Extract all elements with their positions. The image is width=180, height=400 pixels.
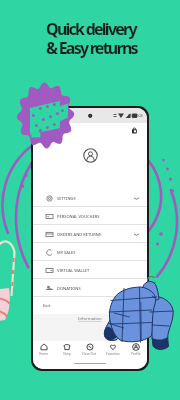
button[interactable]: Profile xyxy=(124,343,147,356)
staticText: Quick delivery xyxy=(46,18,136,40)
button[interactable]: Exit xyxy=(33,297,147,314)
button[interactable]: Home xyxy=(33,343,55,356)
button[interactable]: VIRTUAL WALLET xyxy=(33,261,147,279)
button[interactable]: SETTINGS xyxy=(33,189,147,207)
staticText: VIRTUAL WALLET xyxy=(57,268,90,273)
button[interactable]: Shopping bag xyxy=(132,128,138,135)
staticText: PERSONAL VOUCHERS xyxy=(57,214,100,219)
staticText: Favorites xyxy=(106,352,120,356)
button[interactable]: MY SALES xyxy=(33,243,147,261)
staticText: ORDERS AND RETURNS xyxy=(57,232,102,237)
staticText: 85% 3:04 xyxy=(128,113,143,118)
staticText: Home xyxy=(39,352,49,356)
button[interactable]: Information xyxy=(78,316,102,322)
button[interactable]: ORDERS AND RETURNS xyxy=(33,225,147,243)
button[interactable]: DONATIONS xyxy=(33,279,147,297)
staticText: Profile xyxy=(131,352,141,356)
button[interactable]: Shop xyxy=(55,343,78,356)
button[interactable]: Favorites xyxy=(101,343,124,356)
staticText: MY SALES xyxy=(57,250,76,255)
staticText: DONATIONS xyxy=(57,286,81,291)
staticText: Exit xyxy=(43,303,51,309)
staticText: SETTINGS xyxy=(57,196,76,201)
staticText: & Easy returns xyxy=(46,37,137,59)
button[interactable]: Clear Out xyxy=(78,343,101,356)
staticText: Clear Out xyxy=(82,352,97,356)
staticText: Shop xyxy=(63,352,71,356)
button[interactable]: PERSONAL VOUCHERS xyxy=(33,207,147,225)
